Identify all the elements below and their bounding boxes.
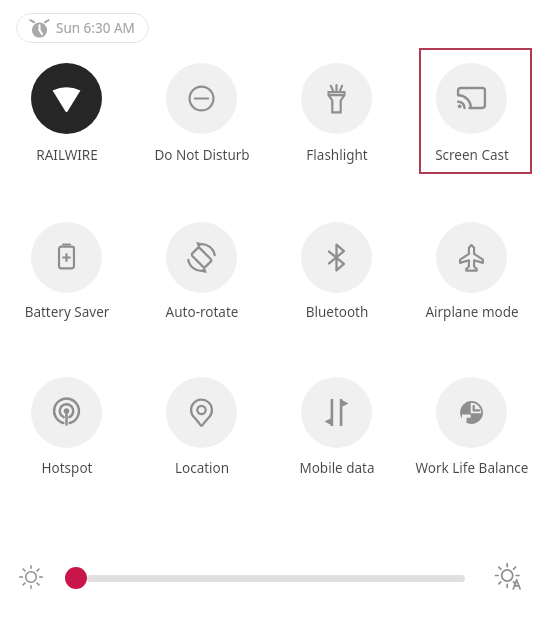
staticText: Airplane mode (398, 303, 546, 321)
staticText: Do Not Disturb (128, 146, 276, 164)
button[interactable]: Brightness low (18, 564, 44, 590)
button[interactable]: Work Life Balance (404, 365, 539, 481)
button[interactable]: Do Not Disturb (134, 51, 269, 167)
button[interactable]: Auto-rotate (134, 210, 269, 325)
staticText: Sun 6:30 AM (56, 19, 135, 37)
button[interactable]: Battery Saver (0, 210, 134, 325)
button[interactable]: Flashlight (269, 51, 404, 167)
button[interactable]: Mobile data (269, 365, 404, 481)
staticText: Screen Cast (398, 146, 546, 164)
staticText: Auto-rotate (128, 303, 276, 321)
staticText: RAILWIRE (0, 146, 141, 164)
button[interactable]: Airplane mode (404, 210, 539, 325)
staticText: Flashlight (263, 146, 411, 164)
button[interactable]: Location (134, 365, 269, 481)
staticText: Bluetooth (263, 303, 411, 321)
button[interactable]: Bluetooth (269, 210, 404, 325)
staticText: Location (128, 459, 276, 477)
staticText: Mobile data (263, 459, 411, 477)
button[interactable]: Screen Cast (404, 51, 539, 167)
staticText: Work Life Balance (398, 459, 546, 477)
button[interactable]: RAILWIRE (0, 51, 134, 167)
staticText: Hotspot (0, 459, 141, 477)
button[interactable]: Auto brightness (494, 562, 524, 592)
staticText: Battery Saver (0, 303, 141, 321)
button[interactable]: Sun 6:30 AM (16, 13, 149, 43)
button[interactable]: Hotspot (0, 365, 134, 481)
button[interactable]: Brightness slider (65, 567, 87, 589)
